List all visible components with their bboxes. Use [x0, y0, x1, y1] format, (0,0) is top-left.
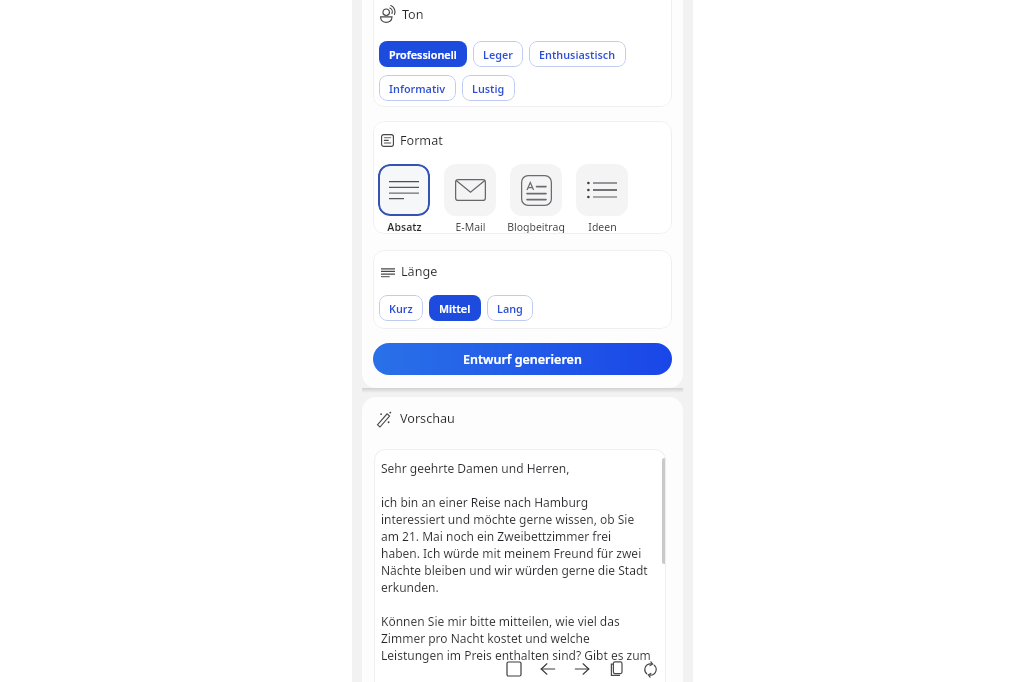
staticText: Leger	[483, 47, 513, 62]
button[interactable]: Forward	[565, 655, 599, 682]
button[interactable]: Ideen	[576, 164, 628, 234]
button[interactable]: Blogbeitrag	[510, 164, 562, 234]
staticText: Entwurf generieren	[463, 351, 582, 368]
button[interactable]: Enthusiastisch	[529, 41, 626, 67]
button[interactable]: Mittel	[429, 295, 481, 321]
staticText: Ton	[402, 6, 424, 23]
button[interactable]: Back	[531, 655, 565, 682]
button[interactable]: Kurz	[379, 295, 423, 321]
staticText: interessiert und möchte gerne wissen, ob…	[381, 511, 635, 527]
button[interactable]: Copy	[599, 655, 633, 682]
staticText: haben. Ich würde mit meinem Freund für z…	[381, 545, 642, 561]
staticText: ich bin an einer Reise nach Hamburg	[381, 494, 589, 510]
button[interactable]: Professionell	[379, 41, 467, 67]
staticText: Lustig	[472, 81, 505, 96]
staticText: Können Sie mir bitte mitteilen, wie viel…	[381, 613, 620, 629]
staticText: Ideen	[588, 220, 617, 234]
staticText: E-Mail	[455, 220, 486, 234]
staticText: Blogbeitrag	[507, 220, 565, 234]
button[interactable]: Tabs	[497, 655, 531, 682]
staticText: Länge	[401, 263, 438, 280]
staticText: Format	[400, 132, 443, 149]
staticText: Zimmer pro Nacht kostet und welche	[381, 630, 590, 646]
staticText: am 21. Mai noch ein Zweibettzimmer frei	[381, 528, 612, 544]
staticText: Mittel	[439, 301, 471, 316]
staticText: Professionell	[389, 47, 457, 62]
staticText: Nächte bleiben und wir würden gerne die …	[381, 562, 648, 578]
staticText: Vorschau	[400, 410, 455, 427]
button[interactable]: Refresh	[633, 655, 667, 682]
staticText: Informativ	[389, 81, 446, 96]
button[interactable]: E-Mail	[444, 164, 496, 234]
staticText: Lang	[497, 301, 523, 316]
button[interactable]: Absatz	[378, 164, 430, 234]
staticText: erkunden.	[381, 579, 439, 595]
staticText: Sehr geehrte Damen und Herren,	[381, 460, 570, 476]
button[interactable]: Leger	[473, 41, 523, 67]
staticText: Kurz	[389, 301, 413, 316]
staticText: Leistungen im Preis enthalten sind? Gibt…	[381, 647, 651, 663]
button[interactable]: Lustig	[462, 75, 515, 101]
button[interactable]: Entwurf generieren	[373, 343, 672, 375]
staticText: Absatz	[387, 220, 422, 234]
staticText: Enthusiastisch	[539, 47, 616, 62]
button[interactable]: Informativ	[379, 75, 456, 101]
button[interactable]: Lang	[487, 295, 533, 321]
